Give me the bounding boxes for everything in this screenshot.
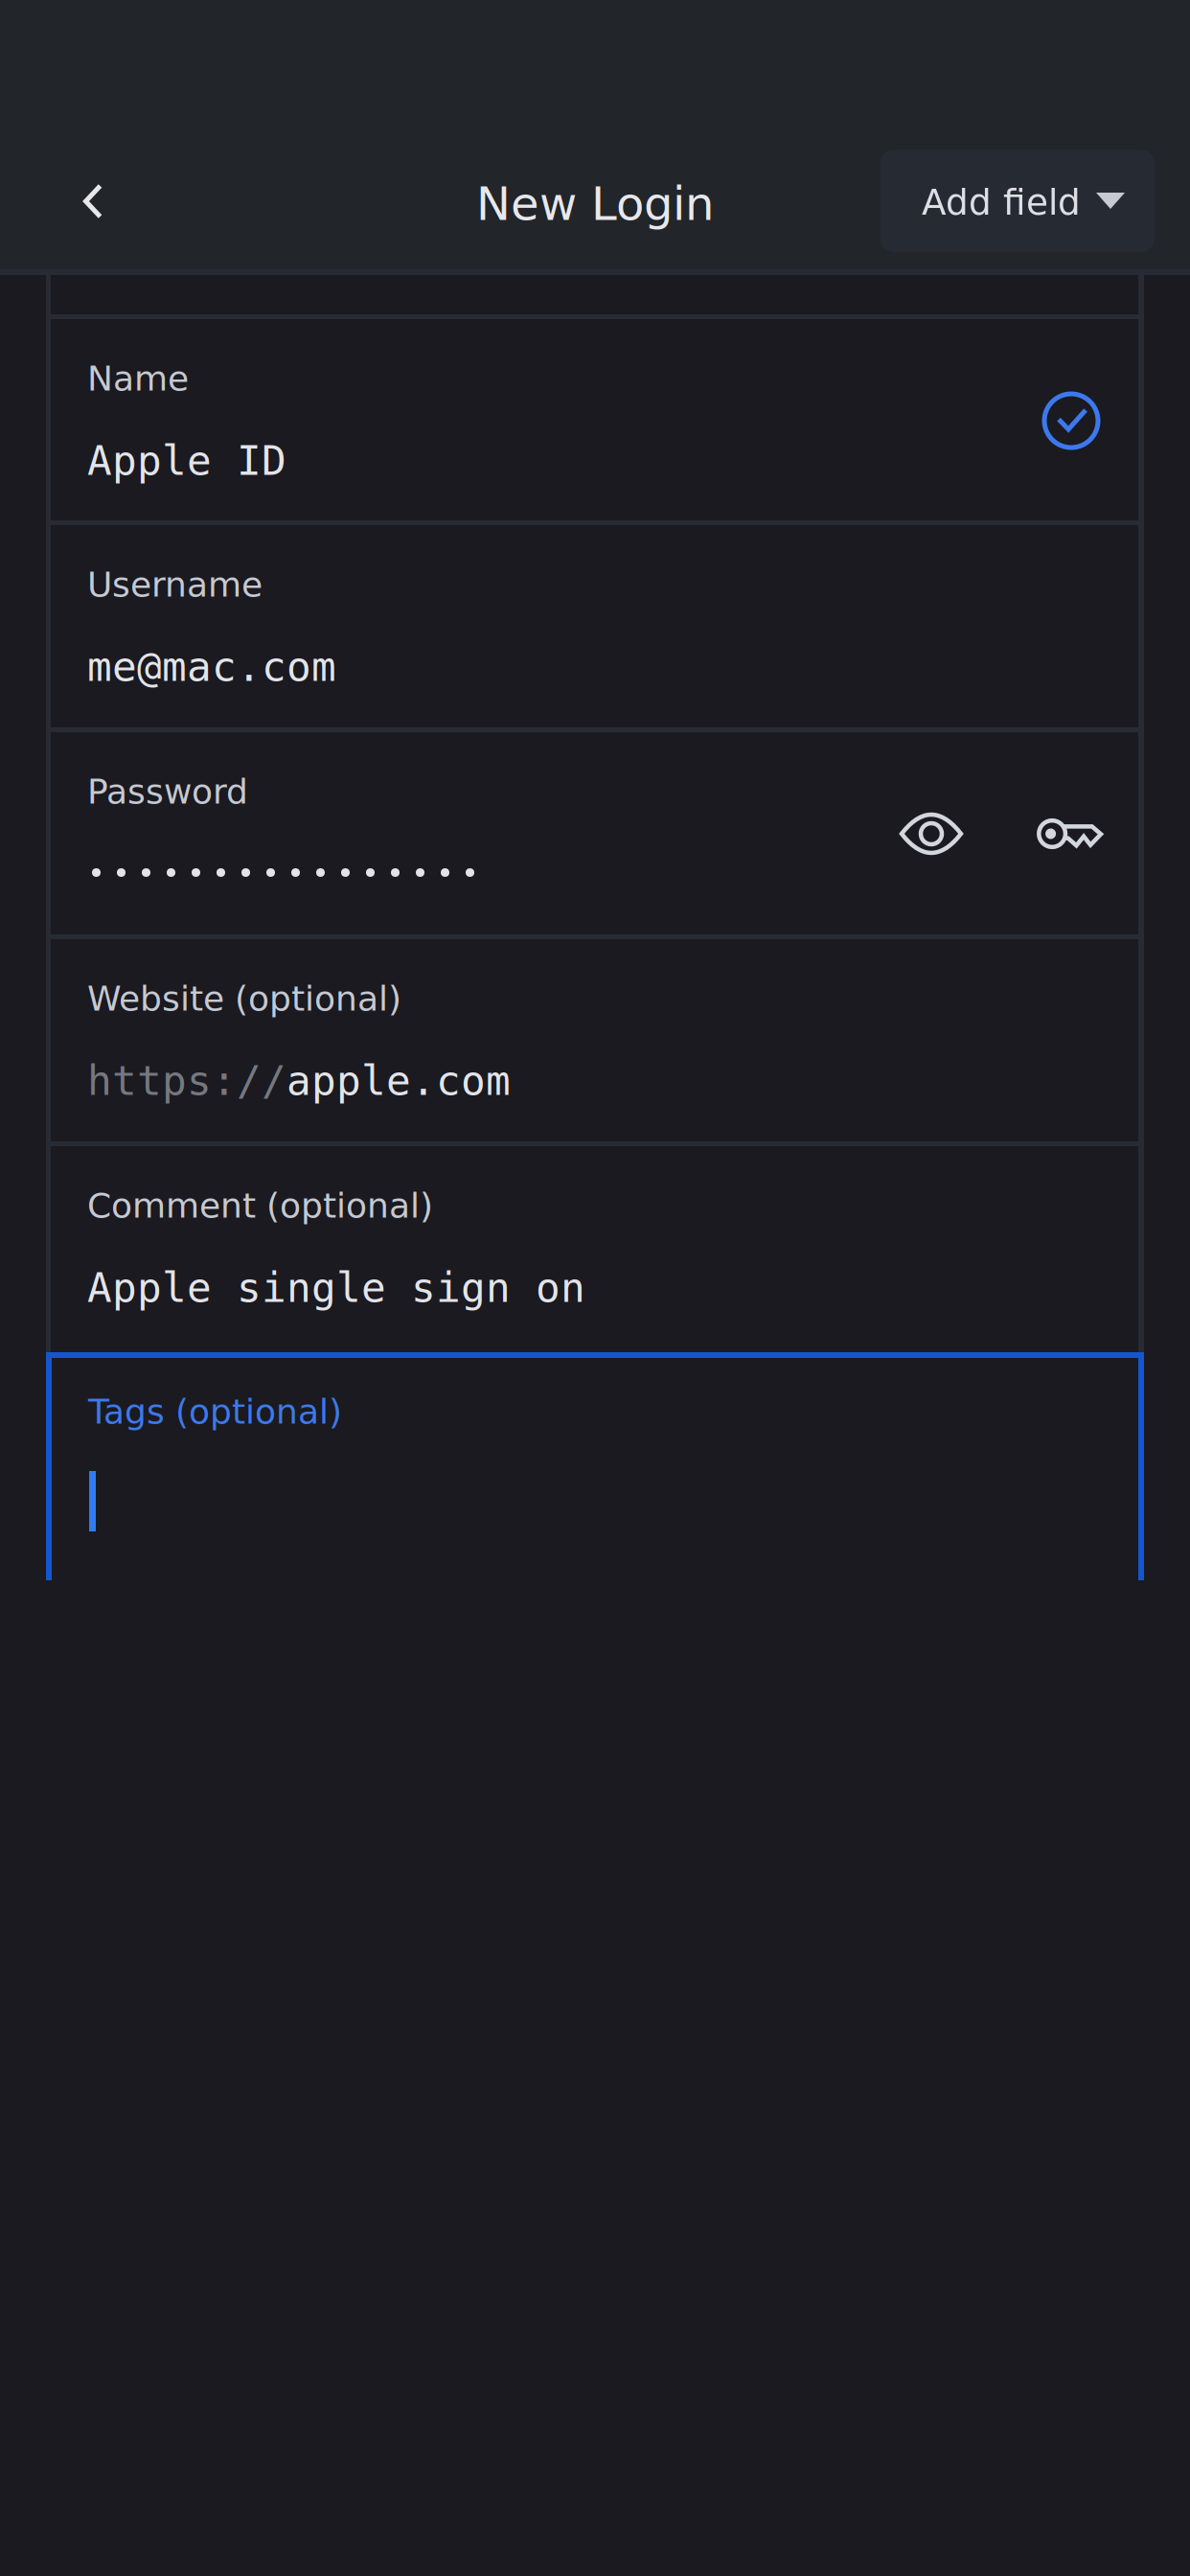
staticText: Apple ID (87, 437, 286, 485)
staticText: https:// (87, 1057, 286, 1105)
staticText: me@mac.com (87, 643, 336, 691)
staticText: Website (optional) (87, 978, 401, 1019)
button[interactable]: Add field (881, 149, 1155, 252)
staticText: Add field (922, 181, 1081, 223)
staticText: apple.com (286, 1057, 511, 1105)
button[interactable]: Confirm (1023, 373, 1119, 469)
button[interactable]: Show password (883, 786, 979, 882)
staticText: Username (87, 564, 263, 605)
staticText: Tags (optional) (88, 1391, 342, 1432)
button[interactable]: Generate password (1022, 786, 1118, 882)
staticText: Comment (optional) (87, 1185, 433, 1226)
button[interactable]: Back (40, 149, 146, 254)
staticText: New Login (476, 177, 714, 231)
staticText: Password (87, 771, 248, 812)
staticText: Apple single sign on (87, 1264, 585, 1312)
staticText: Name (87, 358, 189, 399)
